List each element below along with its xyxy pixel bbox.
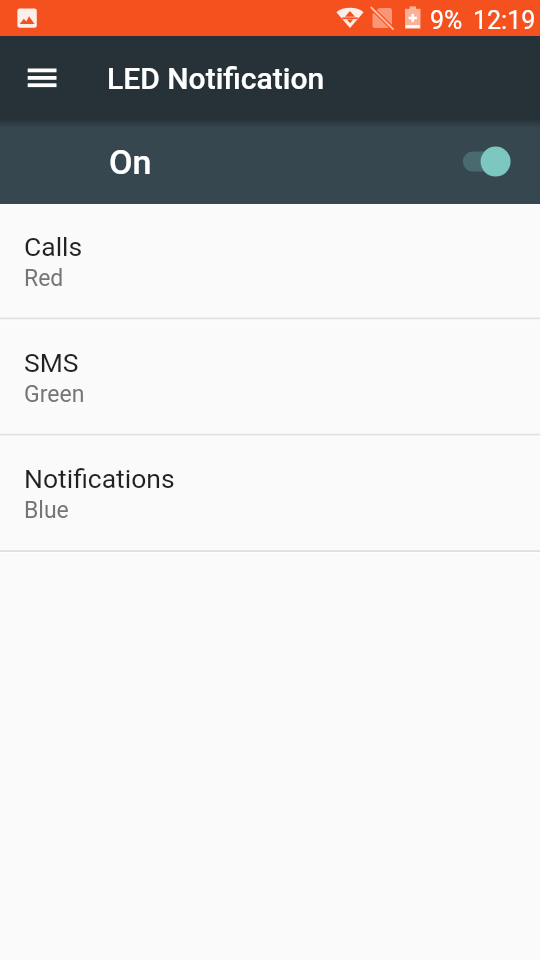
staticText: Green	[24, 381, 85, 408]
button[interactable]: Notifications	[0, 437, 540, 553]
staticText: Notifications	[24, 463, 175, 494]
button[interactable]: On	[0, 120, 540, 204]
staticText: LED Notification	[107, 61, 325, 96]
staticText: Blue	[24, 497, 69, 524]
staticText: SMS	[24, 347, 79, 378]
staticText: On	[109, 142, 152, 182]
staticText: 12:19	[473, 6, 536, 35]
staticText: Calls	[24, 231, 83, 262]
button[interactable]: Open navigation menu	[13, 49, 71, 107]
button[interactable]: Calls	[0, 205, 540, 321]
staticText: 9%	[430, 6, 463, 35]
staticText: Red	[24, 265, 64, 292]
button[interactable]: SMS	[0, 321, 540, 437]
